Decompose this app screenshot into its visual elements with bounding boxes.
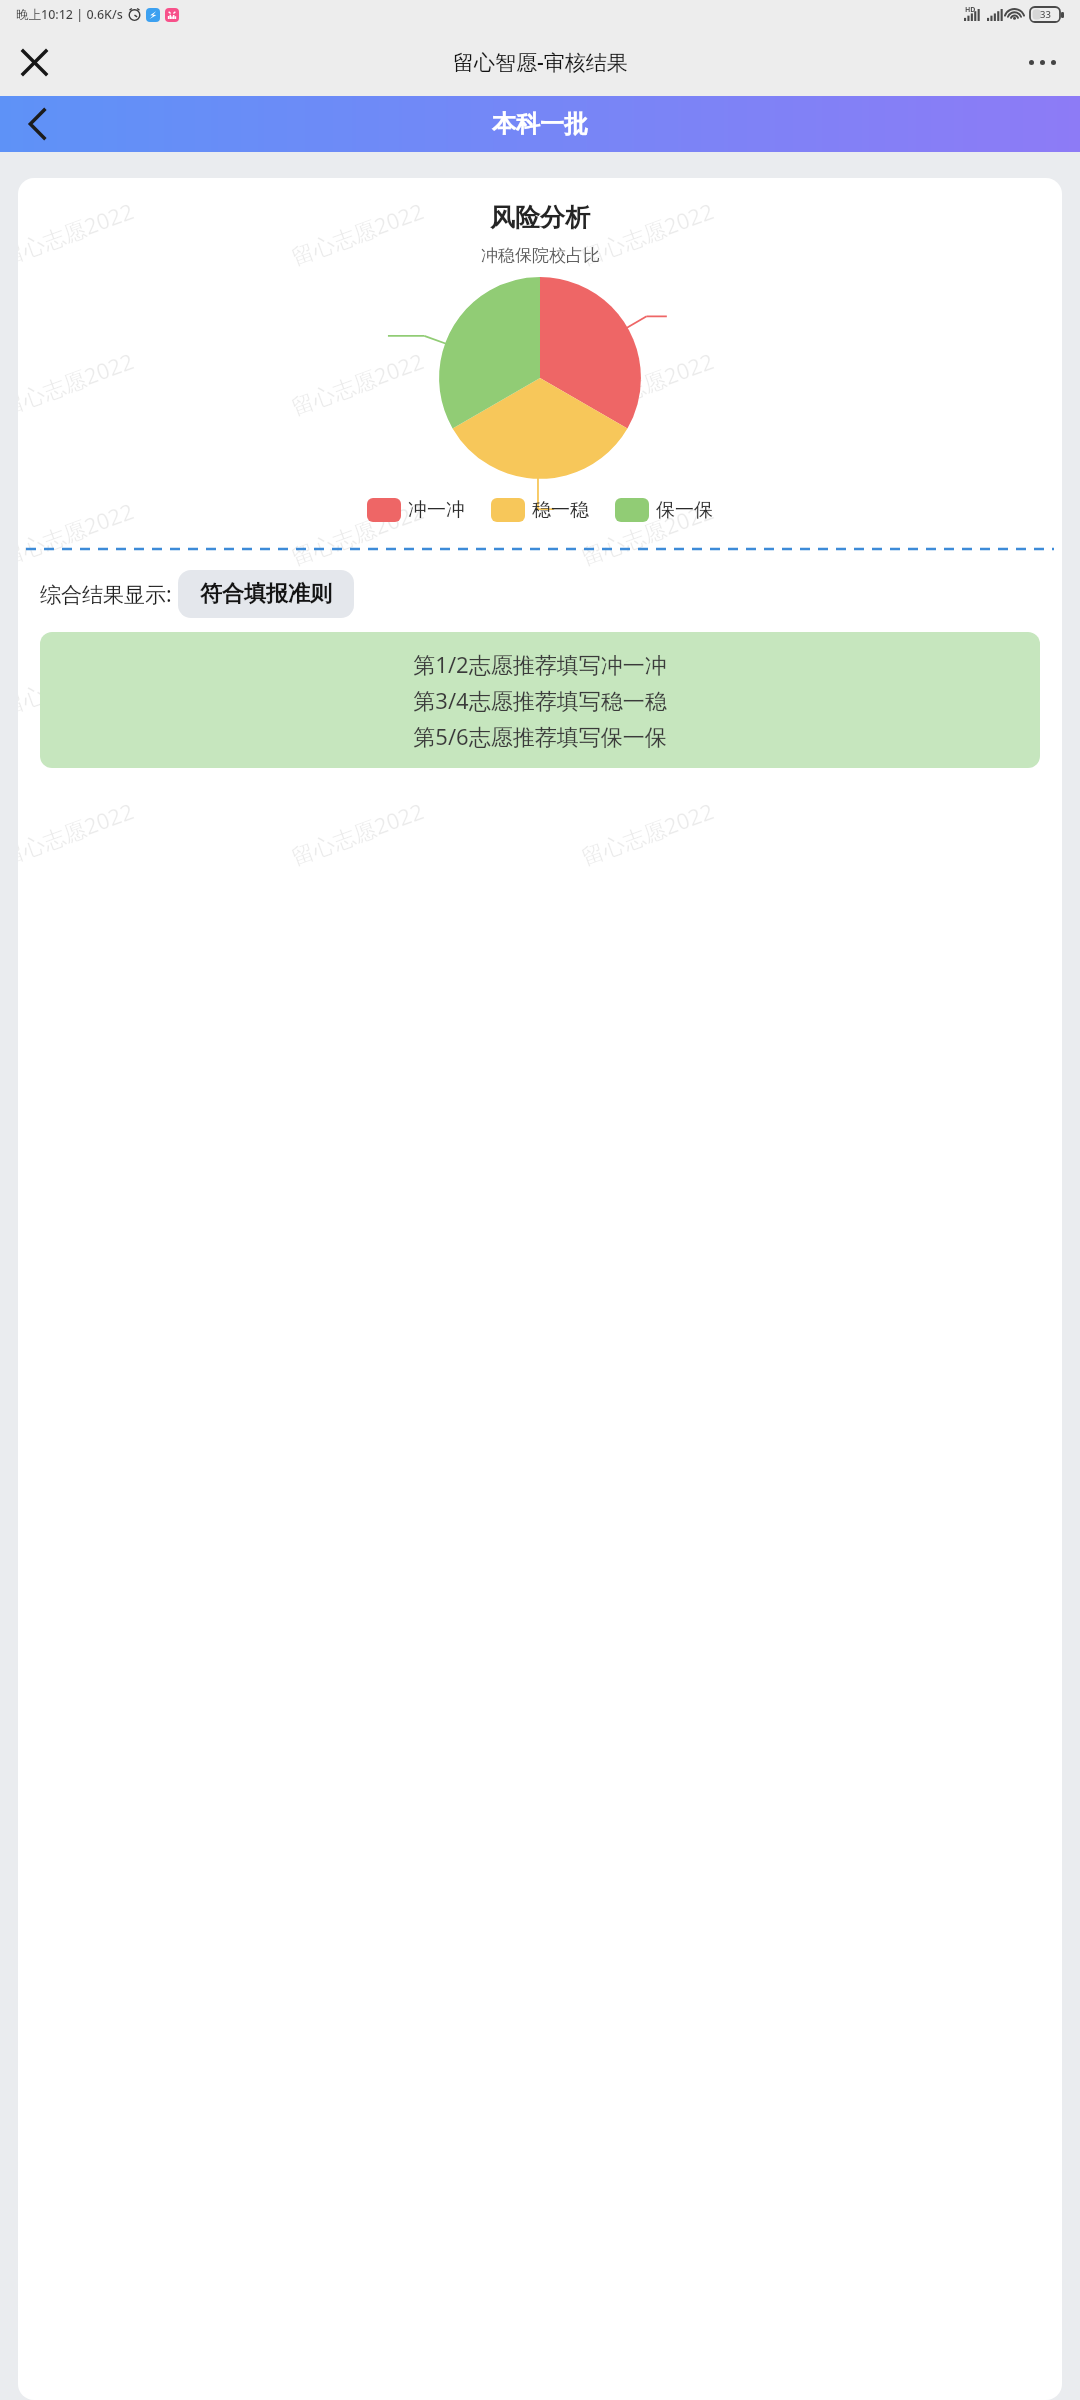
staticText: 留心志愿2022 — [287, 345, 428, 421]
staticText: 留心志愿2022 — [287, 645, 428, 721]
staticText: 留心志愿2022 — [577, 645, 718, 721]
button[interactable]: 符合填报准则 — [178, 570, 354, 618]
staticText: 留心志愿2022 — [18, 195, 138, 271]
staticText: 留心志愿2022 — [577, 195, 718, 271]
staticText: 符合填报准则 — [200, 580, 332, 608]
staticText: 33 — [1040, 8, 1051, 21]
staticText: 保一保 — [656, 498, 713, 522]
staticText: 留心志愿2022 — [287, 795, 428, 871]
staticText: HD — [965, 5, 976, 15]
staticText: 留心志愿2022 — [18, 495, 138, 571]
staticText: 冲一冲 — [408, 498, 465, 522]
staticText: 留心志愿2022 — [18, 795, 138, 871]
staticText: 第5/6志愿推荐填写保一保 — [413, 721, 667, 751]
staticText: 留心志愿2022 — [287, 195, 428, 271]
staticText: 第1/2志愿推荐填写冲一冲 — [413, 649, 667, 679]
staticText: 第3/4志愿推荐填写稳一稳 — [413, 685, 667, 715]
staticText: 留心志愿2022 — [18, 645, 138, 721]
staticText: 风险分析 — [490, 202, 590, 233]
button[interactable]: More options — [1018, 38, 1066, 86]
staticText: 留心志愿2022 — [577, 495, 718, 571]
staticText: 稳一稳 — [532, 498, 589, 522]
staticText: 留心志愿2022 — [577, 345, 718, 421]
button[interactable]: Close — [10, 38, 58, 86]
staticText: 冲稳保院校占比 — [481, 245, 600, 266]
staticText: 综合结果显示: — [40, 580, 172, 609]
staticText: 本科一批 — [492, 109, 588, 139]
staticText: 留心志愿2022 — [287, 495, 428, 571]
staticText: 留心志愿2022 — [577, 795, 718, 871]
staticText: 晚上10:12 | 0.6K/s — [16, 6, 123, 23]
staticText: 留心智愿-审核结果 — [453, 48, 628, 77]
button[interactable]: Back — [14, 101, 60, 147]
staticText: 留心志愿2022 — [18, 345, 138, 421]
